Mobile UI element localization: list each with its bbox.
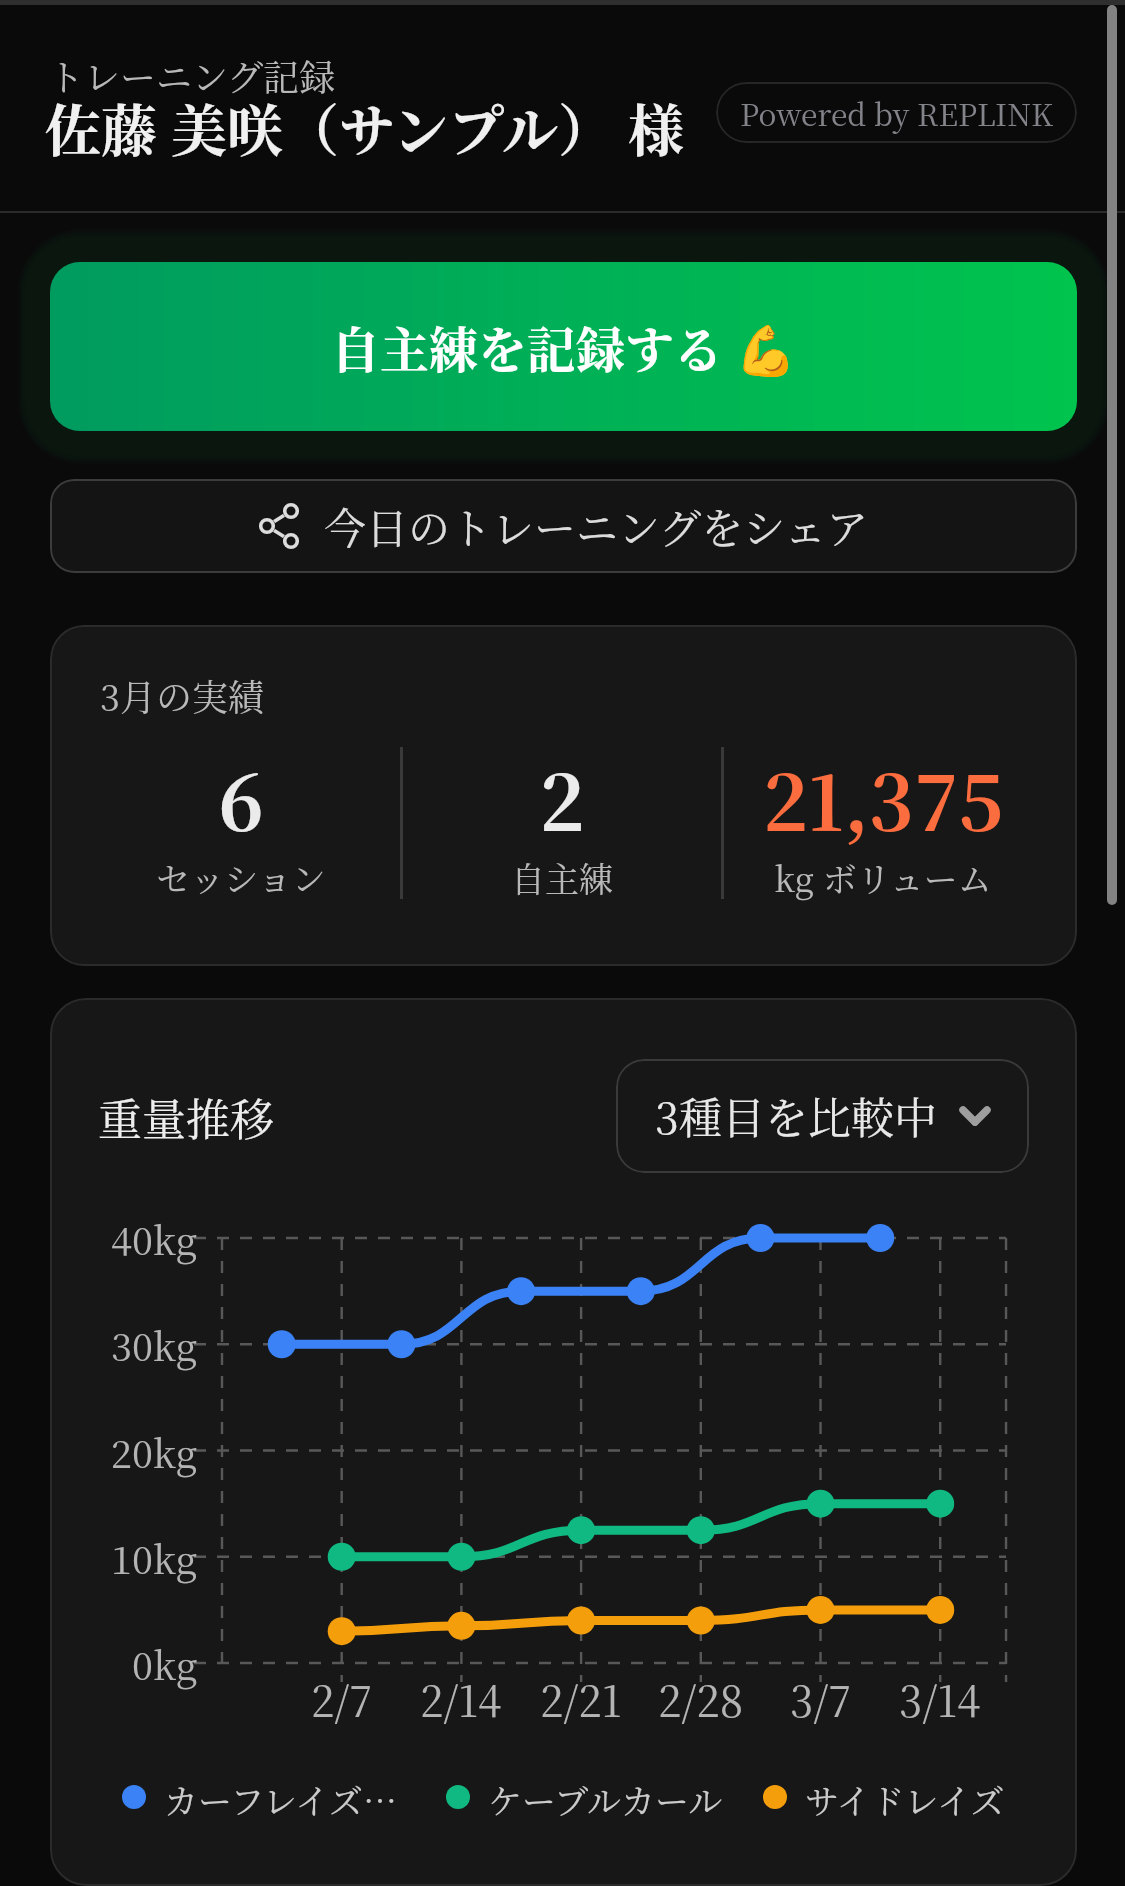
- button[interactable]: Share: [50, 479, 1077, 573]
- staticText: トレーニング記録: [48, 50, 336, 102]
- staticText: 自主練: [511, 853, 613, 902]
- staticText: カーフレイズ…: [164, 1775, 397, 1819]
- staticText: 10kg: [111, 1530, 198, 1585]
- staticText: 2/21: [540, 1669, 622, 1729]
- button[interactable]: 自主練を記録する 💪: [50, 262, 1077, 431]
- staticText: Powered by REPLINK: [740, 91, 1053, 134]
- staticText: 6: [218, 744, 264, 853]
- staticText: 2: [539, 744, 585, 853]
- staticText: サイドレイズ: [805, 1775, 1005, 1819]
- button[interactable]: Powered by REPLINK: [716, 82, 1077, 143]
- staticText: 3/7: [790, 1669, 852, 1729]
- staticText: 自主練を記録する 💪: [331, 312, 797, 382]
- staticText: 40kg: [111, 1211, 198, 1266]
- staticText: 20kg: [111, 1424, 198, 1479]
- staticText: kg ボリューム: [774, 853, 992, 902]
- staticText: ケーブルカール: [488, 1775, 723, 1819]
- button[interactable]: 3種目を比較中: [616, 1059, 1029, 1173]
- staticText: 2/28: [658, 1669, 744, 1729]
- staticText: 2/7: [311, 1669, 373, 1729]
- staticText: セッション: [156, 853, 326, 902]
- staticText: 3月の実績: [100, 670, 265, 722]
- staticText: 2/14: [420, 1669, 502, 1729]
- staticText: 3種目を比較中: [655, 1085, 937, 1147]
- other: Share: [258, 502, 300, 550]
- staticText: 重量推移: [98, 1085, 274, 1148]
- staticText: 0kg: [132, 1636, 198, 1691]
- staticText: 30kg: [111, 1317, 198, 1372]
- staticText: 21,375: [763, 744, 1004, 853]
- staticText: 佐藤 美咲（サンプル） 様: [45, 87, 684, 167]
- staticText: 3/14: [899, 1669, 981, 1729]
- staticText: 今日のトレーニングをシェア: [324, 496, 869, 556]
- other: Expand: [959, 1106, 991, 1126]
